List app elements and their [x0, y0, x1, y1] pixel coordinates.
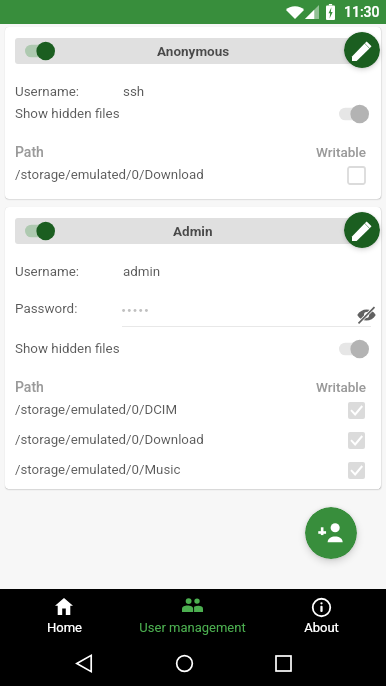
button[interactable]: Edit user	[344, 212, 380, 248]
button[interactable]	[25, 41, 55, 61]
staticText: Admin	[173, 223, 213, 239]
button[interactable]: About	[257, 589, 386, 640]
button[interactable]: Edit user	[344, 32, 380, 68]
staticText: Path	[15, 144, 44, 160]
staticText: admin	[123, 264, 161, 280]
button[interactable]: /storage/emulated/0/DCIM	[15, 395, 371, 425]
button[interactable]	[339, 339, 369, 359]
staticText: /storage/emulated/0/Download	[15, 167, 204, 183]
staticText: /storage/emulated/0/Music	[15, 462, 181, 478]
staticText: Username:	[15, 264, 79, 280]
button[interactable]: Writable	[344, 428, 368, 452]
staticText: Path	[15, 379, 44, 395]
button[interactable]: Recent apps	[265, 645, 301, 681]
button[interactable]: Admin	[15, 218, 371, 244]
staticText: User management	[139, 620, 246, 635]
button[interactable]: /storage/emulated/0/Music	[15, 455, 371, 485]
button[interactable]: Anonymous	[15, 38, 371, 64]
button[interactable]: Home	[0, 589, 128, 640]
button[interactable]: Writable	[344, 398, 368, 422]
staticText: ssh	[123, 84, 145, 100]
staticText: Username:	[15, 84, 79, 100]
staticText: 11:30	[344, 4, 380, 20]
staticText: Home	[47, 620, 82, 635]
button[interactable]	[339, 104, 369, 124]
button[interactable]: Show hidden files	[15, 338, 371, 360]
button[interactable]: Writable	[344, 458, 368, 482]
button[interactable]: User management	[128, 589, 257, 640]
button[interactable]: Add user	[305, 507, 357, 559]
button[interactable]: Show hidden files	[15, 103, 371, 125]
staticText: Writable	[316, 144, 366, 160]
button[interactable]	[25, 221, 55, 241]
button[interactable]: Home	[166, 645, 202, 681]
staticText: /storage/emulated/0/Download	[15, 432, 204, 448]
staticText: About	[304, 620, 339, 635]
staticText: Show hidden files	[15, 341, 120, 357]
staticText: Anonymous	[157, 43, 230, 59]
staticText: Show hidden files	[15, 106, 120, 122]
button[interactable]: Show password	[353, 301, 379, 327]
button[interactable]: /storage/emulated/0/Download	[15, 425, 371, 455]
staticText: Password:	[15, 301, 78, 317]
staticText: Writable	[316, 379, 366, 395]
button[interactable]: /storage/emulated/0/Download	[15, 160, 371, 190]
staticText: /storage/emulated/0/DCIM	[15, 402, 178, 418]
button[interactable]: Back	[66, 645, 102, 681]
button[interactable]: Writable	[344, 163, 368, 187]
